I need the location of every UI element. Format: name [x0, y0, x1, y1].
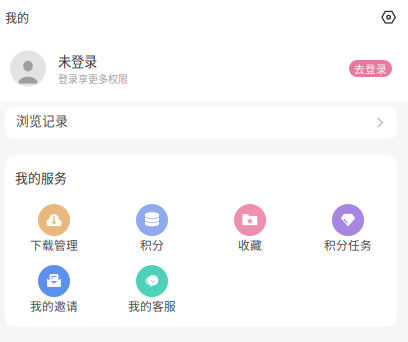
button[interactable]: 下载管理: [5, 205, 103, 257]
button[interactable]: 积分任务: [299, 205, 397, 257]
button[interactable]: 设置: [376, 4, 402, 30]
button[interactable]: 我的客服: [103, 266, 201, 318]
staticText: 我的邀请: [30, 297, 78, 314]
staticText: 收藏: [238, 236, 262, 253]
staticText: 积分任务: [324, 236, 372, 253]
button[interactable]: 收藏: [201, 205, 299, 257]
staticText: 去登录: [354, 61, 387, 76]
button[interactable]: 去登录: [349, 60, 392, 77]
staticText: 积分: [140, 236, 164, 253]
staticText: 浏览记录: [16, 111, 68, 129]
button[interactable]: 浏览记录: [5, 107, 397, 139]
staticText: 下载管理: [30, 236, 78, 253]
staticText: 未登录: [58, 51, 97, 70]
button[interactable]: 积分: [103, 205, 201, 257]
staticText: 我的: [5, 9, 29, 26]
staticText: 我的客服: [128, 297, 176, 314]
staticText: 登录享更多权限: [58, 71, 128, 86]
staticText: 我的服务: [15, 168, 67, 186]
button[interactable]: 我的邀请: [5, 266, 103, 318]
